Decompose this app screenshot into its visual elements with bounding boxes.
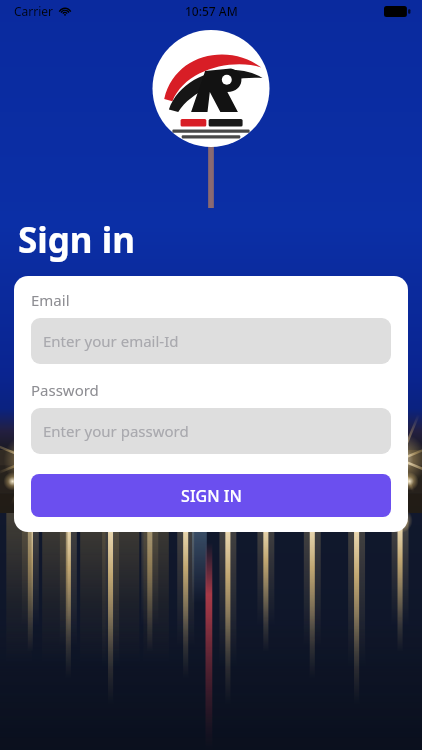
staticText: Email bbox=[31, 290, 70, 310]
button[interactable]: SIGN IN bbox=[31, 474, 391, 517]
staticText: Carrier bbox=[14, 3, 54, 19]
staticText: 10:57 AM bbox=[185, 3, 238, 19]
button[interactable]: Enter your password bbox=[31, 408, 391, 454]
button[interactable]: Enter your email-Id bbox=[31, 318, 391, 364]
staticText: Enter your email-Id bbox=[43, 331, 179, 351]
staticText: SIGN IN bbox=[181, 485, 242, 507]
staticText: Enter your password bbox=[43, 421, 189, 441]
staticText: Password bbox=[31, 380, 99, 400]
staticText: Sign in bbox=[18, 216, 135, 264]
